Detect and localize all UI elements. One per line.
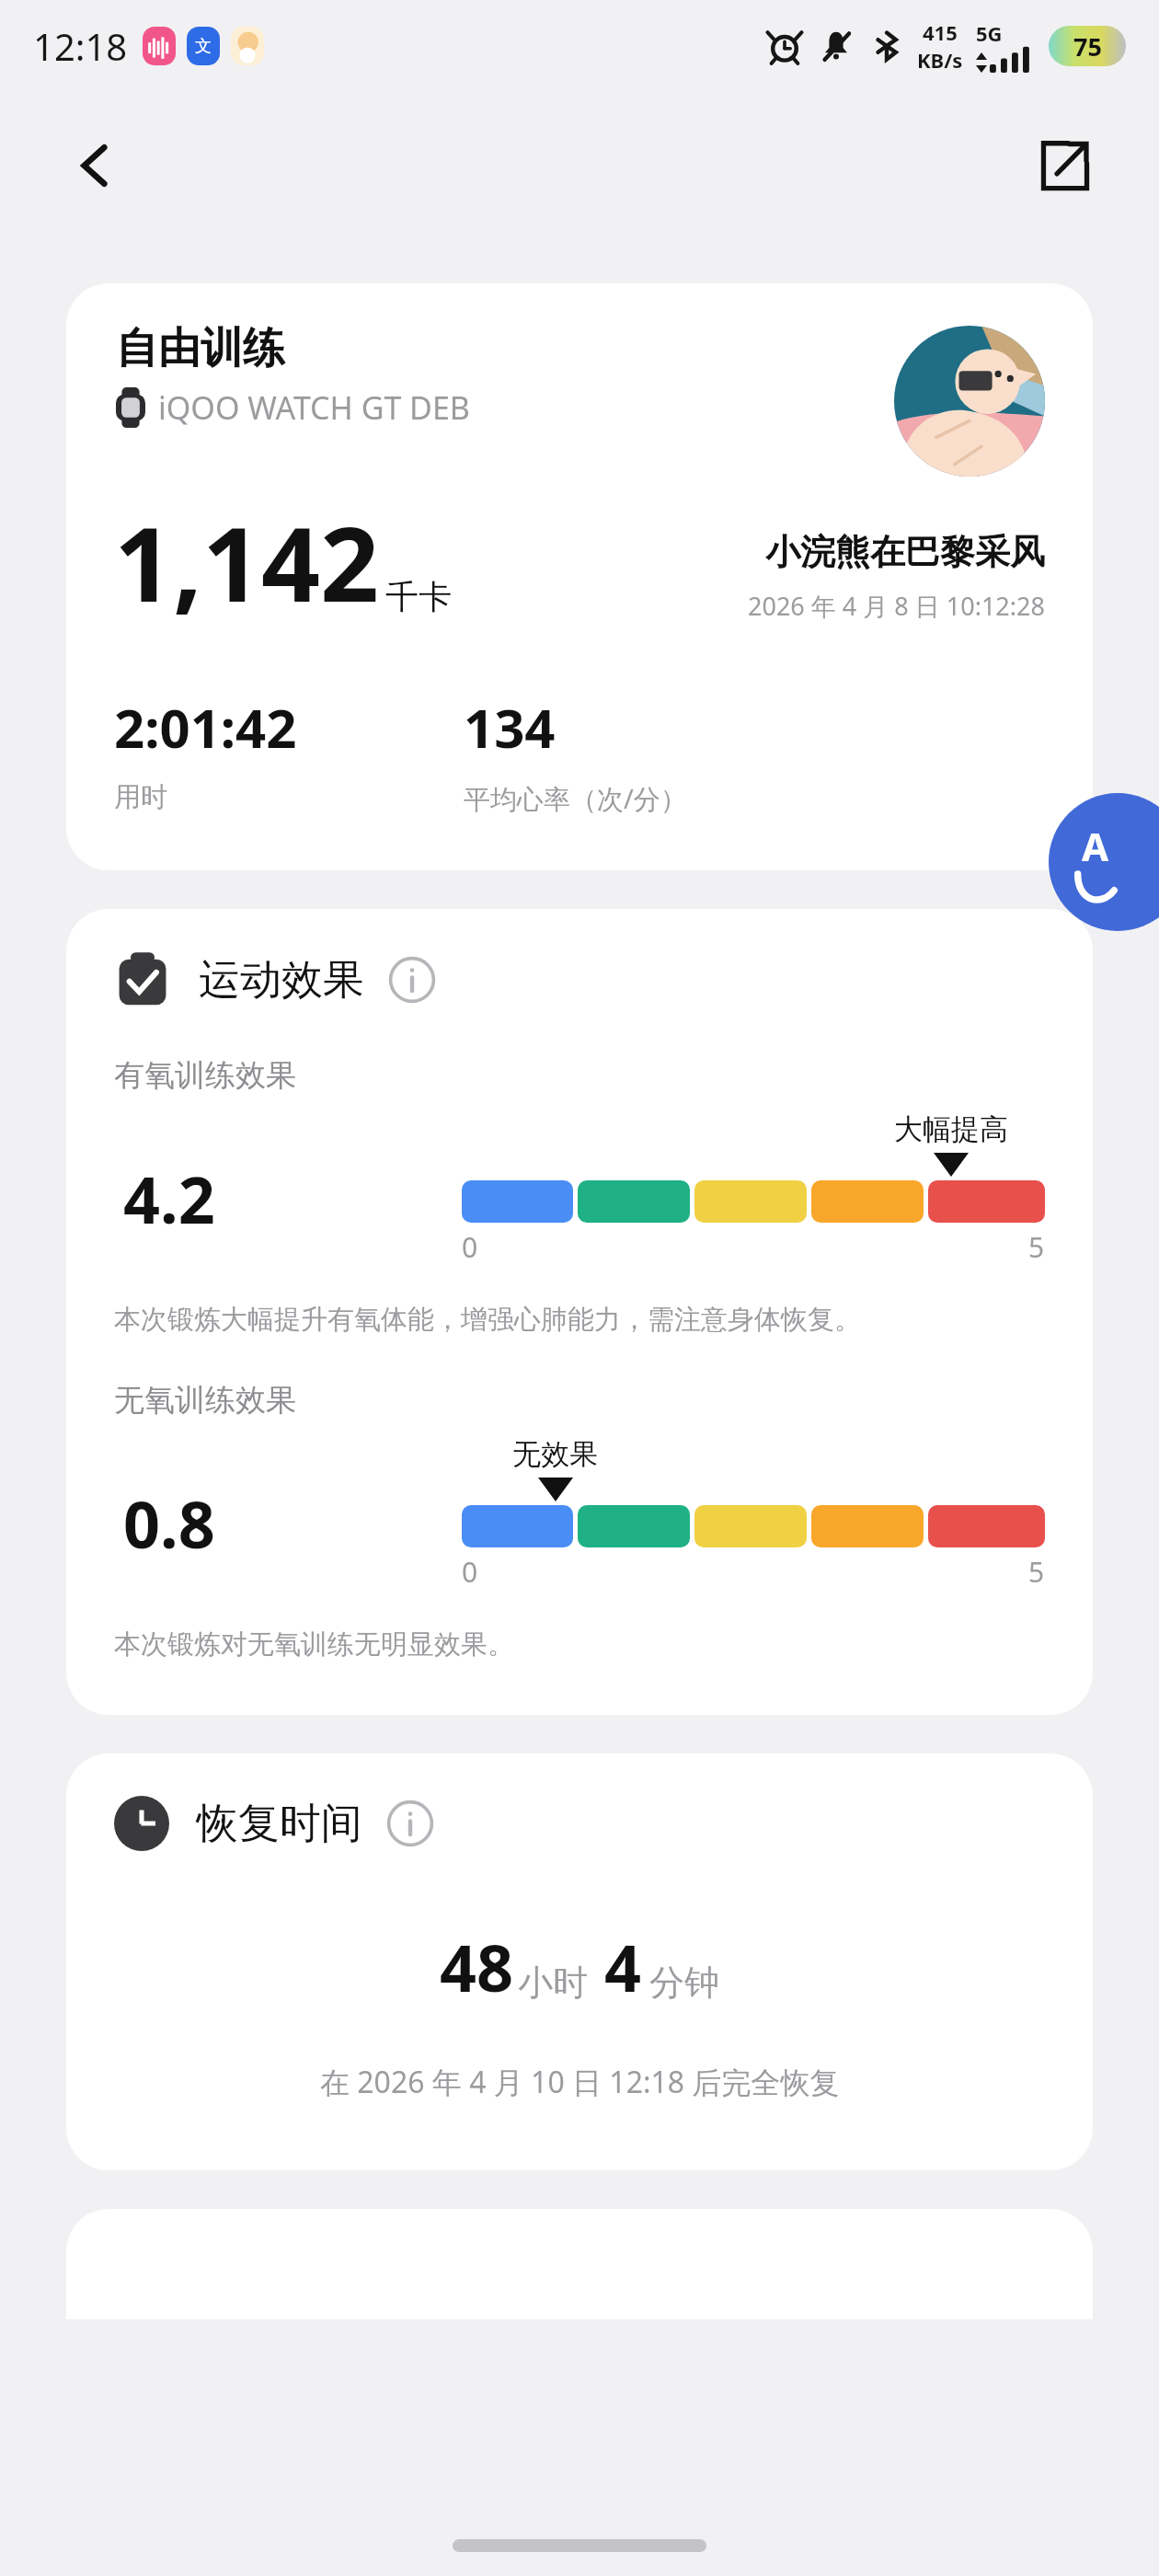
staticText: 2:01:42 — [114, 691, 297, 764]
staticText: A — [1082, 820, 1109, 872]
staticText: 用时 — [114, 780, 167, 814]
staticText: 千卡 — [385, 576, 452, 617]
button[interactable]: 自由训练 — [66, 283, 1093, 870]
staticText: KB/s — [917, 46, 963, 74]
staticText: 415 — [923, 18, 958, 46]
staticText: 本次锻炼大幅提升有氧体能，增强心肺能力，需注意身体恢复。 — [114, 1303, 861, 1337]
staticText: 134 — [464, 691, 556, 764]
staticText: 2026 年 4 月 8 日 10:12:28 — [748, 589, 1045, 623]
staticText: 分钟 — [649, 1961, 719, 2005]
staticText: 小浣熊在巴黎采风 — [765, 530, 1045, 574]
staticText: 运动效果 — [199, 954, 364, 1006]
staticText: 5 — [1028, 1228, 1045, 1266]
staticText: 0.8 — [123, 1479, 215, 1567]
staticText: 平均心率（次/分） — [464, 780, 687, 817]
staticText: 本次锻炼对无氧训练无明显效果。 — [114, 1627, 514, 1662]
button[interactable]: Share — [1021, 121, 1109, 210]
button[interactable]: Assistant — [1049, 793, 1159, 931]
staticText: 大幅提高 — [894, 1111, 1008, 1147]
button[interactable]: 运动效果 — [114, 951, 1093, 1008]
staticText: 有氧训练效果 — [114, 1056, 296, 1095]
staticText: 无氧训练效果 — [114, 1381, 296, 1420]
staticText: 小时 — [518, 1961, 588, 2005]
staticText: 4 — [604, 1923, 642, 2010]
staticText: 恢复时间 — [197, 1798, 362, 1850]
staticText: 1,142 — [114, 491, 380, 632]
staticText: 无效果 — [512, 1436, 598, 1472]
staticText: 0 — [462, 1228, 478, 1266]
staticText: 75 — [1073, 29, 1102, 63]
staticText: iQOO WATCH GT DEB — [158, 386, 470, 429]
staticText: 4.2 — [123, 1155, 215, 1242]
staticText: 48 — [440, 1923, 514, 2010]
staticText: 5G — [976, 19, 1003, 47]
staticText: 12:18 — [33, 21, 128, 71]
staticText: 0 — [462, 1553, 478, 1591]
button[interactable]: Back — [52, 121, 140, 210]
staticText: 5 — [1028, 1553, 1045, 1591]
staticText: 自由训练 — [116, 322, 285, 375]
staticText: 在 2026 年 4 月 10 日 12:18 后完全恢复 — [320, 2062, 840, 2102]
button[interactable]: Info — [388, 956, 436, 1004]
staticText: 文 — [195, 36, 212, 57]
button[interactable]: User avatar — [894, 326, 1045, 477]
button[interactable]: 恢复时间 — [114, 1796, 1093, 1851]
button[interactable]: Info — [386, 1800, 434, 1847]
